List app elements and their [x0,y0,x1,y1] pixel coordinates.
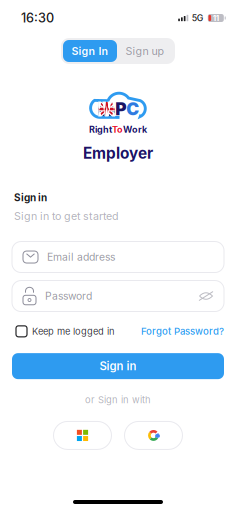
staticText: Keep me logged in [32,326,115,337]
staticText: Sign In [71,44,108,57]
staticText: P [115,98,126,119]
button[interactable]: Keep me logged in [12,323,115,340]
staticText: 11 [213,13,219,23]
staticText: Forgot Password? [141,325,224,337]
staticText: To [112,124,123,135]
staticText: Employer [83,144,153,163]
button[interactable]: Sign in [12,353,224,379]
staticText: Sign in [99,359,136,373]
staticText: Email address [47,251,115,263]
staticText: C [126,98,139,119]
button[interactable]: Sign in with Microsoft [53,421,111,449]
staticText: Work [123,124,147,135]
staticText: or Sign in with [85,394,151,405]
staticText: Password [45,290,92,302]
button[interactable]: Sign up [117,40,173,62]
button[interactable]: Forgot Password? [141,322,224,340]
staticText: Sign up [125,44,164,57]
staticText: 16:30 [21,10,54,26]
staticText: Right [89,124,112,135]
button[interactable]: Sign in with Google [124,421,182,449]
staticText: Sign in [14,191,47,204]
staticText: Sign in to get started [14,210,119,222]
staticText: 5G [192,13,204,23]
button[interactable]: Sign In [63,40,117,62]
